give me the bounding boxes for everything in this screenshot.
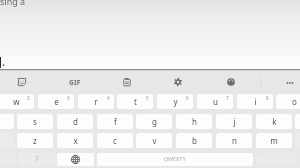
button[interactable]: f xyxy=(97,114,133,129)
staticText: f xyxy=(114,116,117,127)
button[interactable]: t xyxy=(117,94,153,109)
button[interactable]: n xyxy=(216,133,252,148)
button[interactable]: k xyxy=(256,114,292,129)
staticText: 6 xyxy=(186,95,189,101)
staticText: j xyxy=(233,116,236,127)
staticText: 4 xyxy=(107,95,110,101)
button[interactable]: s xyxy=(17,114,53,129)
button[interactable]: o xyxy=(276,94,300,109)
staticText: y xyxy=(173,96,178,107)
button[interactable]: Switch keyboard language xyxy=(57,153,94,166)
button[interactable]: d xyxy=(57,114,93,129)
button[interactable]: w xyxy=(0,94,34,109)
staticText: 7 xyxy=(226,95,229,101)
staticText: i xyxy=(254,96,257,107)
staticText: k xyxy=(272,116,277,127)
button[interactable]: Clipboard xyxy=(119,74,135,90)
button[interactable]: i xyxy=(237,94,273,109)
staticText: QWERTY xyxy=(164,156,186,163)
staticText: u xyxy=(213,96,218,107)
button[interactable]: Stickers xyxy=(14,74,30,90)
button[interactable]: m xyxy=(256,133,292,148)
button[interactable]: GIF xyxy=(64,75,86,89)
staticText: w xyxy=(13,96,20,107)
staticText: 2 xyxy=(27,95,30,101)
staticText: x xyxy=(73,135,78,146)
staticText: o xyxy=(292,96,297,107)
staticText: . xyxy=(275,154,278,165)
button[interactable]: y xyxy=(157,94,193,109)
button[interactable]: j xyxy=(216,114,252,129)
staticText: 8 xyxy=(266,95,269,101)
staticText: n xyxy=(232,135,237,146)
staticText: t xyxy=(134,96,137,107)
button[interactable]: l xyxy=(295,114,300,129)
staticText: v xyxy=(152,135,157,146)
staticText: ]. xyxy=(0,53,6,69)
staticText: s xyxy=(33,116,37,127)
staticText: z xyxy=(33,135,37,146)
button[interactable]: h xyxy=(176,114,212,129)
button[interactable]: c xyxy=(97,133,133,148)
button[interactable]: Theme xyxy=(223,74,239,90)
button[interactable]: v xyxy=(136,133,172,148)
staticText: h xyxy=(192,116,197,127)
button[interactable]: e xyxy=(38,94,74,109)
button[interactable]: g xyxy=(136,114,172,129)
staticText: r xyxy=(94,96,98,107)
staticText: ? xyxy=(35,154,39,165)
staticText: m xyxy=(270,135,278,146)
button[interactable]: b xyxy=(176,133,212,148)
staticText: c xyxy=(113,135,117,146)
staticText: e xyxy=(54,96,59,107)
button[interactable]: ? xyxy=(18,153,55,166)
staticText: 3 xyxy=(67,95,70,101)
staticText: b xyxy=(192,135,197,146)
button[interactable]: More options xyxy=(282,75,298,91)
button[interactable]: z xyxy=(17,133,53,148)
button[interactable]: u xyxy=(197,94,233,109)
staticText: sing a xyxy=(0,0,26,7)
button[interactable]: QWERTY xyxy=(97,153,253,166)
staticText: 5 xyxy=(146,95,149,101)
button[interactable]: Settings xyxy=(170,74,186,90)
button[interactable]: r xyxy=(78,94,114,109)
staticText: GIF xyxy=(69,78,81,87)
button[interactable]: x xyxy=(57,133,93,148)
staticText: g xyxy=(152,116,157,127)
staticText: d xyxy=(73,116,78,127)
